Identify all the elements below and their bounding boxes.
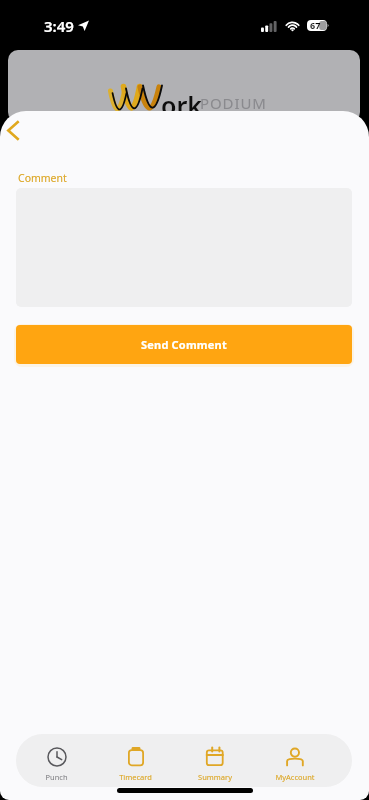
staticText: ork — [161, 88, 202, 122]
staticText: Timecard — [119, 772, 152, 782]
staticText: PODIUM — [200, 93, 267, 113]
staticText: Summary — [198, 772, 232, 782]
button[interactable]: Summary — [175, 743, 255, 778]
button[interactable]: Back — [0, 111, 36, 147]
staticText: Comment — [18, 171, 67, 185]
staticText: 67 — [310, 19, 321, 31]
staticText: MyAccount — [275, 772, 315, 782]
button[interactable]: Send Comment — [16, 325, 352, 364]
staticText: Punch — [45, 772, 68, 782]
staticText: Send Comment — [141, 337, 227, 352]
button[interactable]: MyAccount — [255, 743, 335, 778]
button[interactable]: Punch — [17, 743, 96, 778]
staticText: 3:49 — [44, 16, 74, 36]
button[interactable]: Timecard — [96, 743, 175, 778]
